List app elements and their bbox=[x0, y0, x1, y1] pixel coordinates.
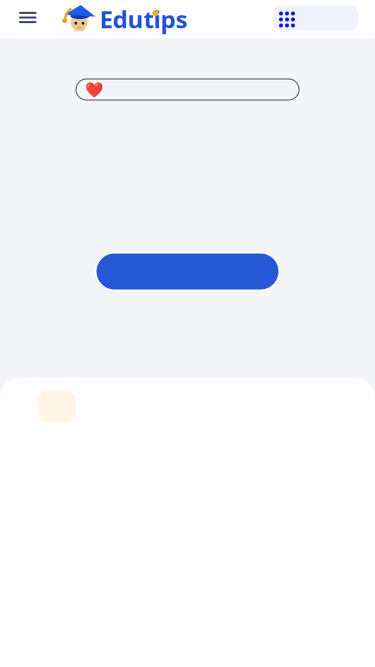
staticText: ❤️ bbox=[85, 81, 103, 98]
staticText: Edutips bbox=[99, 3, 187, 35]
button[interactable]: Favourites bbox=[76, 79, 299, 100]
button[interactable]: Category bbox=[0, 378, 76, 422]
button[interactable]: Menu bbox=[19, 0, 36, 38]
button[interactable]: Apps bbox=[273, 5, 358, 30]
button[interactable]: Continue bbox=[95, 252, 280, 291]
